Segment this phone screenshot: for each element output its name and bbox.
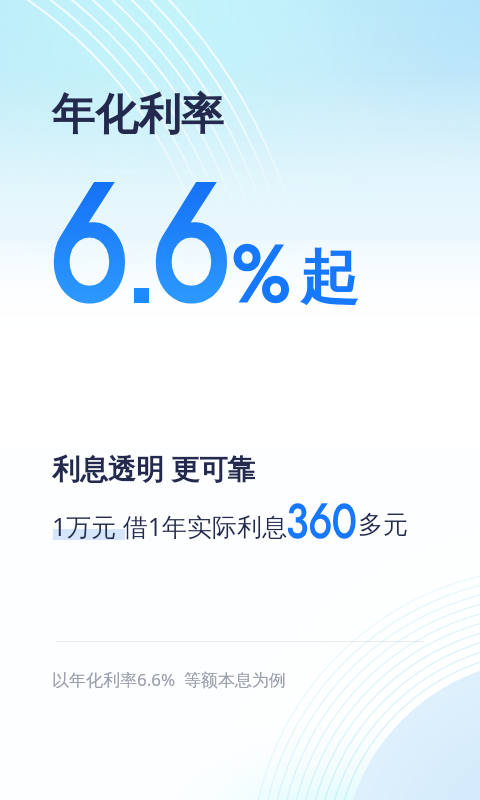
staticText: 以年化利率6.6% 等额本息为例 <box>52 668 286 691</box>
staticText: 6 <box>49 124 130 361</box>
staticText: 1万元 借1年实际利息 <box>52 509 288 543</box>
staticText: 利息透明 更可靠 <box>52 449 256 487</box>
staticText: 360 <box>286 487 357 556</box>
staticText: 年化利率 <box>52 88 224 142</box>
staticText: 6 <box>151 124 232 361</box>
staticText: 起 <box>300 241 358 314</box>
staticText: % <box>232 218 291 331</box>
staticText: 多元 <box>358 509 408 540</box>
